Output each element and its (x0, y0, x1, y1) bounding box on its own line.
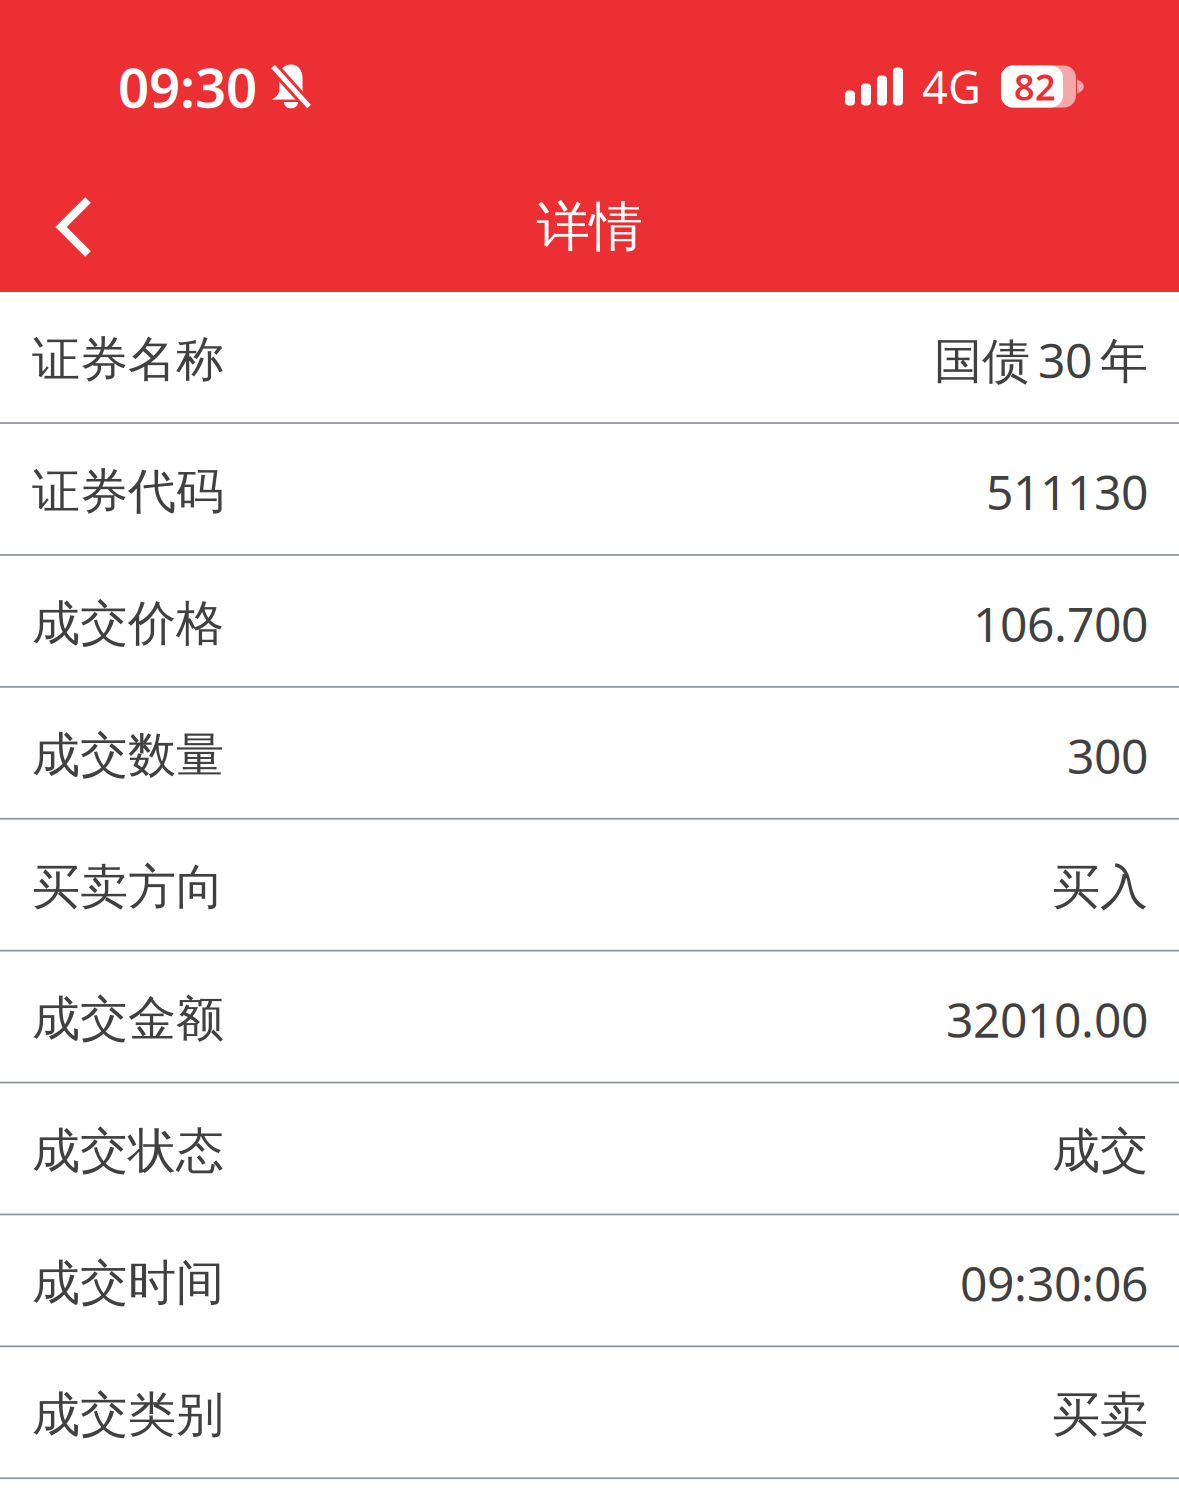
staticText: 成交金额 (32, 990, 224, 1049)
staticText: 成交类别 (32, 1385, 224, 1444)
button[interactable]: Back (0, 162, 139, 292)
staticText: 300 (1067, 723, 1148, 787)
staticText: 成交价格 (32, 594, 224, 653)
staticText: 成交 (1052, 1121, 1148, 1180)
staticText: 证券名称 (32, 330, 224, 389)
staticText: 买卖 (1052, 1385, 1148, 1444)
staticText: 82 (1014, 63, 1056, 110)
staticText: 买卖方向 (32, 858, 224, 917)
staticText: 证券代码 (32, 462, 224, 521)
staticText: 511130 (986, 460, 1148, 523)
staticText: 32010.00 (946, 987, 1148, 1051)
staticText: 09:30:06 (960, 1251, 1148, 1315)
staticText: 成交数量 (32, 726, 224, 785)
staticText: 买入 (1052, 858, 1148, 917)
staticText: 成交状态 (32, 1121, 224, 1180)
staticText: 国债 30 年 (934, 328, 1148, 391)
staticText: 106.700 (973, 591, 1148, 655)
staticText: 详情 (536, 194, 642, 260)
staticText: 4G (922, 56, 981, 117)
staticText: 成交时间 (32, 1253, 224, 1312)
staticText: 09:30 (118, 50, 257, 123)
